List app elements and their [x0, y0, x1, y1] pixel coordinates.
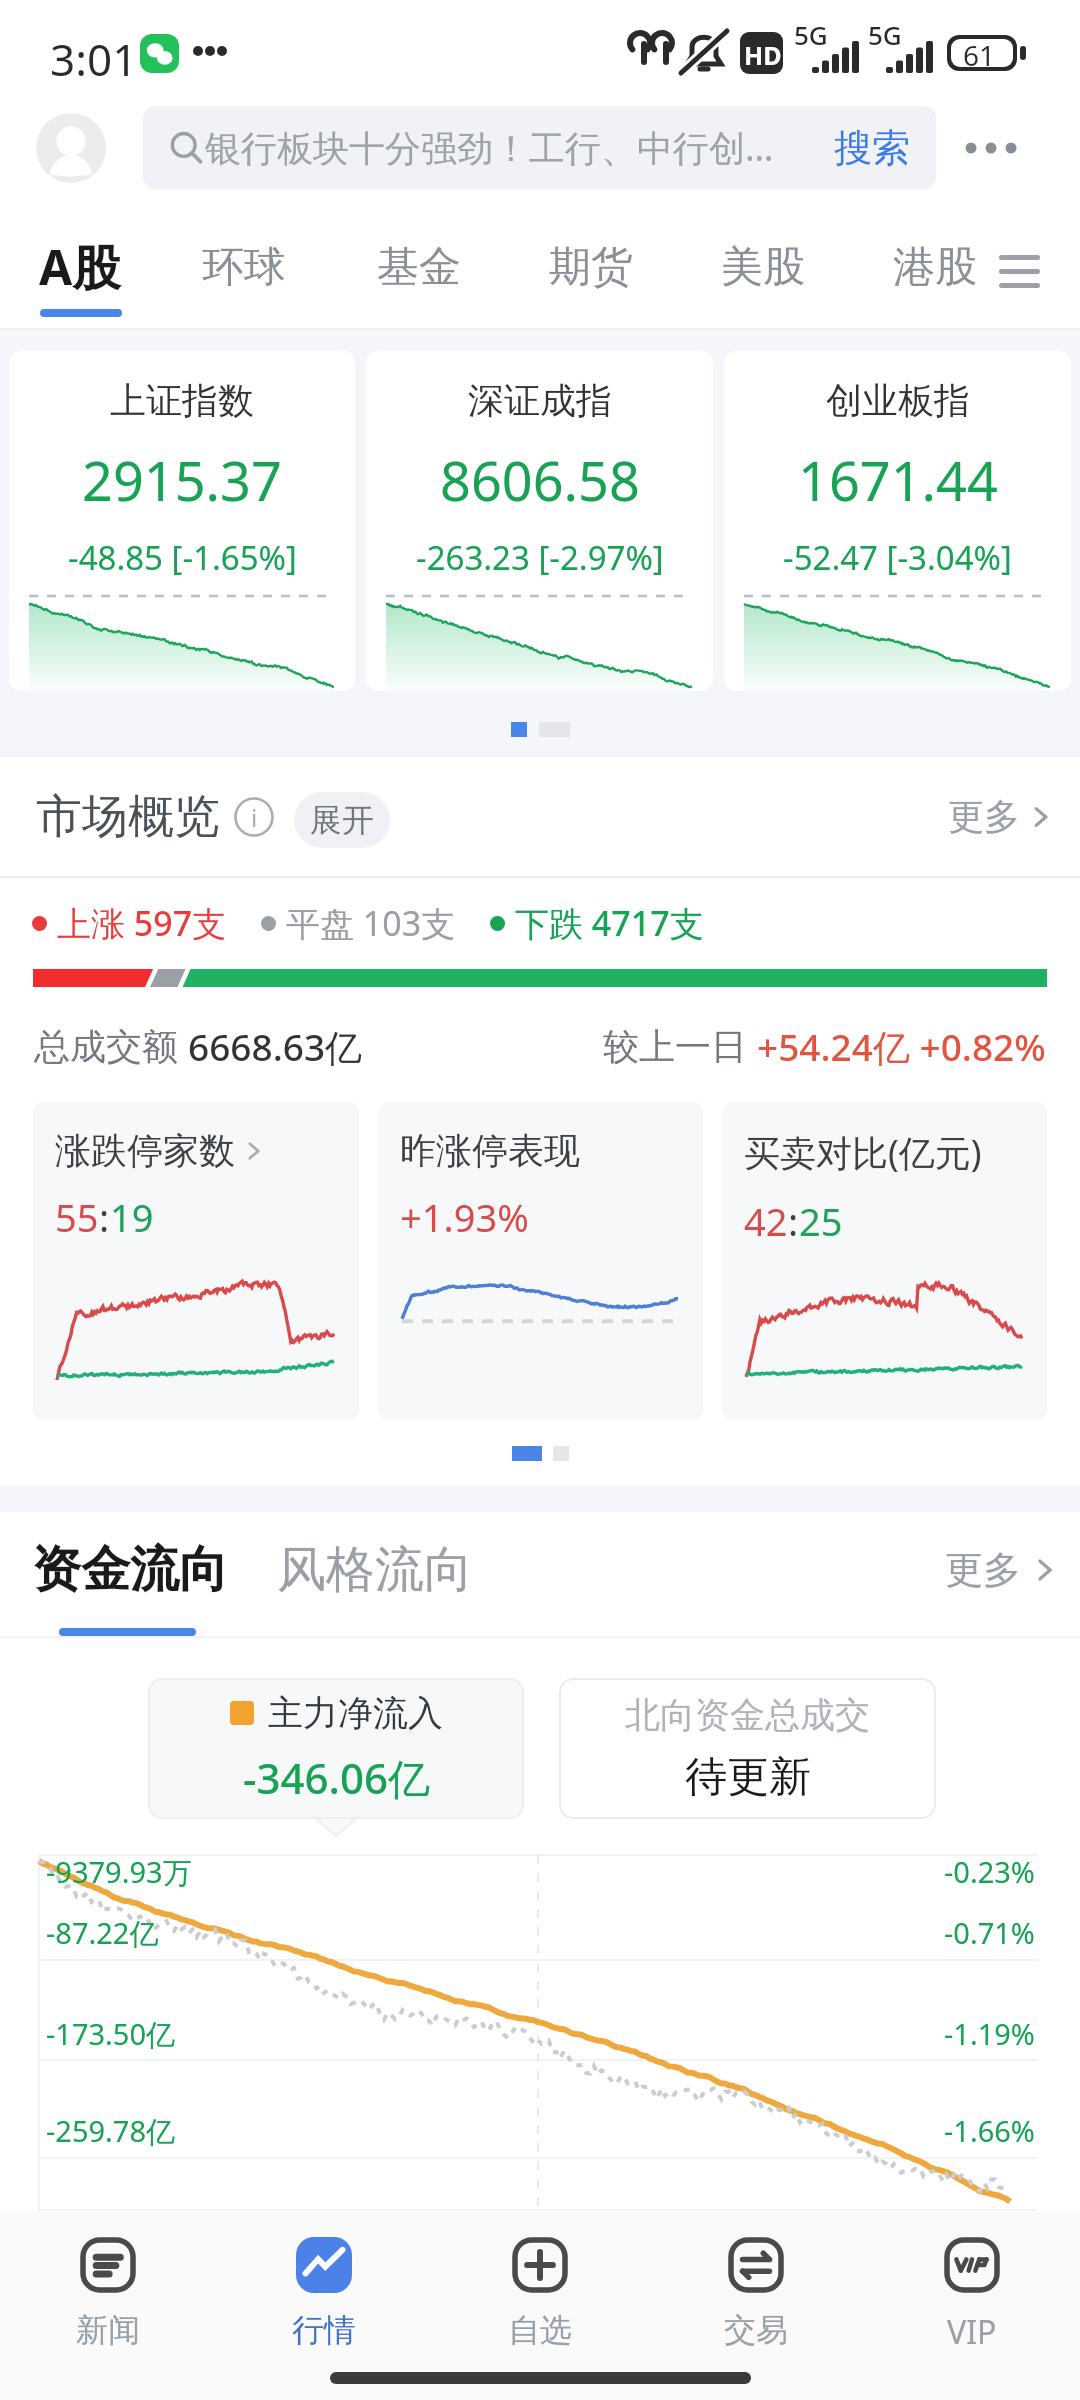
staticText: 新闻 [76, 2310, 140, 2350]
staticText: 买卖对比(亿元) [744, 1128, 982, 1177]
button[interactable]: 美股 [708, 212, 818, 322]
staticText: -0.71% [944, 1913, 1035, 1952]
staticText: -0.23% [944, 1852, 1035, 1891]
staticText: 61 [963, 36, 996, 74]
staticText: -9379.93万 [46, 1852, 192, 1892]
staticText: 基金 [377, 241, 461, 294]
staticText: -346.06亿 [243, 1749, 431, 1806]
button[interactable]: 主力净流入 [148, 1678, 524, 1819]
staticText: 55 [55, 1191, 99, 1243]
button[interactable]: 银行板块十分强劲！工行、中行创… [143, 106, 936, 189]
staticText: 展开 [310, 800, 374, 840]
button[interactable]: 买卖对比(亿元) [722, 1102, 1047, 1420]
button[interactable]: 更多 [948, 794, 1056, 839]
button[interactable]: 自选 [432, 2212, 648, 2400]
staticText: 深证成指 [468, 378, 612, 423]
staticText: VIP [947, 2310, 997, 2354]
staticText: 北向资金总成交 [625, 1693, 870, 1737]
button[interactable]: 北向资金总成交 [559, 1678, 936, 1819]
staticText: 1671.44 [798, 443, 998, 517]
button[interactable]: 行情 [216, 2212, 432, 2400]
button[interactable]: Menu [987, 232, 1052, 310]
staticText: 更多 [948, 794, 1020, 839]
staticText: -173.50亿 [46, 2014, 176, 2054]
button[interactable]: 风格流向 [277, 1534, 473, 1606]
staticText: 主力净流入 [268, 1691, 443, 1735]
staticText: 上涨 597支 [57, 900, 227, 946]
button[interactable]: 资金流向 [32, 1534, 228, 1606]
staticText: 昨涨停表现 [400, 1128, 580, 1173]
button[interactable]: 港股 [880, 212, 990, 322]
staticText: 交易 [724, 2310, 788, 2350]
staticText: -263.23 [-2.97%] [416, 535, 664, 580]
staticText: 42 [744, 1195, 788, 1247]
staticText: 创业板指 [826, 378, 970, 423]
staticText: 8606.58 [440, 443, 640, 517]
staticText: 市场概览 [36, 788, 220, 846]
button[interactable]: 上证指数 [9, 351, 355, 691]
button[interactable]: 涨跌停家数 [33, 1102, 359, 1420]
staticText: 平盘 103支 [286, 900, 456, 946]
staticText: 5G [868, 17, 902, 52]
staticText: 19 [110, 1191, 154, 1243]
button[interactable]: 展开 [294, 792, 390, 848]
staticText: -87.22亿 [46, 1913, 159, 1953]
staticText: HD [744, 38, 782, 72]
staticText: 25 [799, 1195, 843, 1247]
staticText: +54.24亿 +0.82% [757, 1021, 1046, 1067]
staticText: 行情 [292, 2310, 356, 2350]
staticText: 6668.63亿 [188, 1021, 363, 1067]
staticText: -52.47 [-3.04%] [783, 535, 1012, 580]
staticText: 总成交额 [34, 1021, 188, 1067]
button[interactable]: 交易 [648, 2212, 864, 2400]
button[interactable]: 基金 [364, 212, 474, 322]
staticText: 5G [794, 17, 828, 52]
button[interactable]: 期货 [536, 212, 646, 322]
staticText: -1.19% [944, 2014, 1035, 2053]
staticText: 环球 [202, 241, 286, 294]
staticText: A股 [39, 234, 121, 300]
staticText: 较上一日 [603, 1021, 757, 1067]
button[interactable]: Info [234, 797, 274, 837]
button[interactable]: More options [960, 114, 1028, 182]
staticText: 自选 [508, 2310, 572, 2350]
staticText: 期货 [549, 241, 633, 294]
button[interactable]: 新闻 [0, 2212, 216, 2400]
staticText: 涨跌停家数 [55, 1128, 235, 1173]
button[interactable]: A股 [20, 212, 140, 322]
staticText: 待更新 [685, 1751, 811, 1804]
staticText: -1.66% [944, 2111, 1035, 2150]
button[interactable]: 更多 [945, 1542, 1061, 1598]
button[interactable]: 创业板指 [724, 351, 1071, 691]
staticText: i [251, 801, 258, 834]
button[interactable]: 昨涨停表现 [378, 1102, 703, 1420]
button[interactable]: Profile [36, 113, 106, 183]
staticText: 美股 [721, 241, 805, 294]
staticText: -48.85 [-1.65%] [68, 535, 297, 580]
staticText: 港股 [893, 241, 977, 294]
staticText: 下跌 4717支 [515, 900, 704, 946]
button[interactable]: 搜索 [834, 124, 910, 172]
button[interactable]: VIP [864, 2212, 1080, 2400]
staticText: 2915.37 [82, 443, 282, 517]
staticText: : [99, 1191, 110, 1243]
button[interactable]: 环球 [189, 212, 299, 322]
button[interactable]: 深证成指 [366, 351, 713, 691]
staticText: -259.78亿 [46, 2111, 176, 2151]
staticText: 银行板块十分强劲！工行、中行创… [205, 123, 774, 172]
staticText: +1.93% [400, 1191, 529, 1243]
staticText: 更多 [945, 1546, 1021, 1594]
staticText: 资金流向 [32, 1539, 228, 1601]
staticText: 3:01 [50, 29, 138, 89]
staticText: 上证指数 [110, 378, 254, 423]
staticText: 风格流向 [277, 1539, 473, 1601]
staticText: : [788, 1195, 799, 1247]
